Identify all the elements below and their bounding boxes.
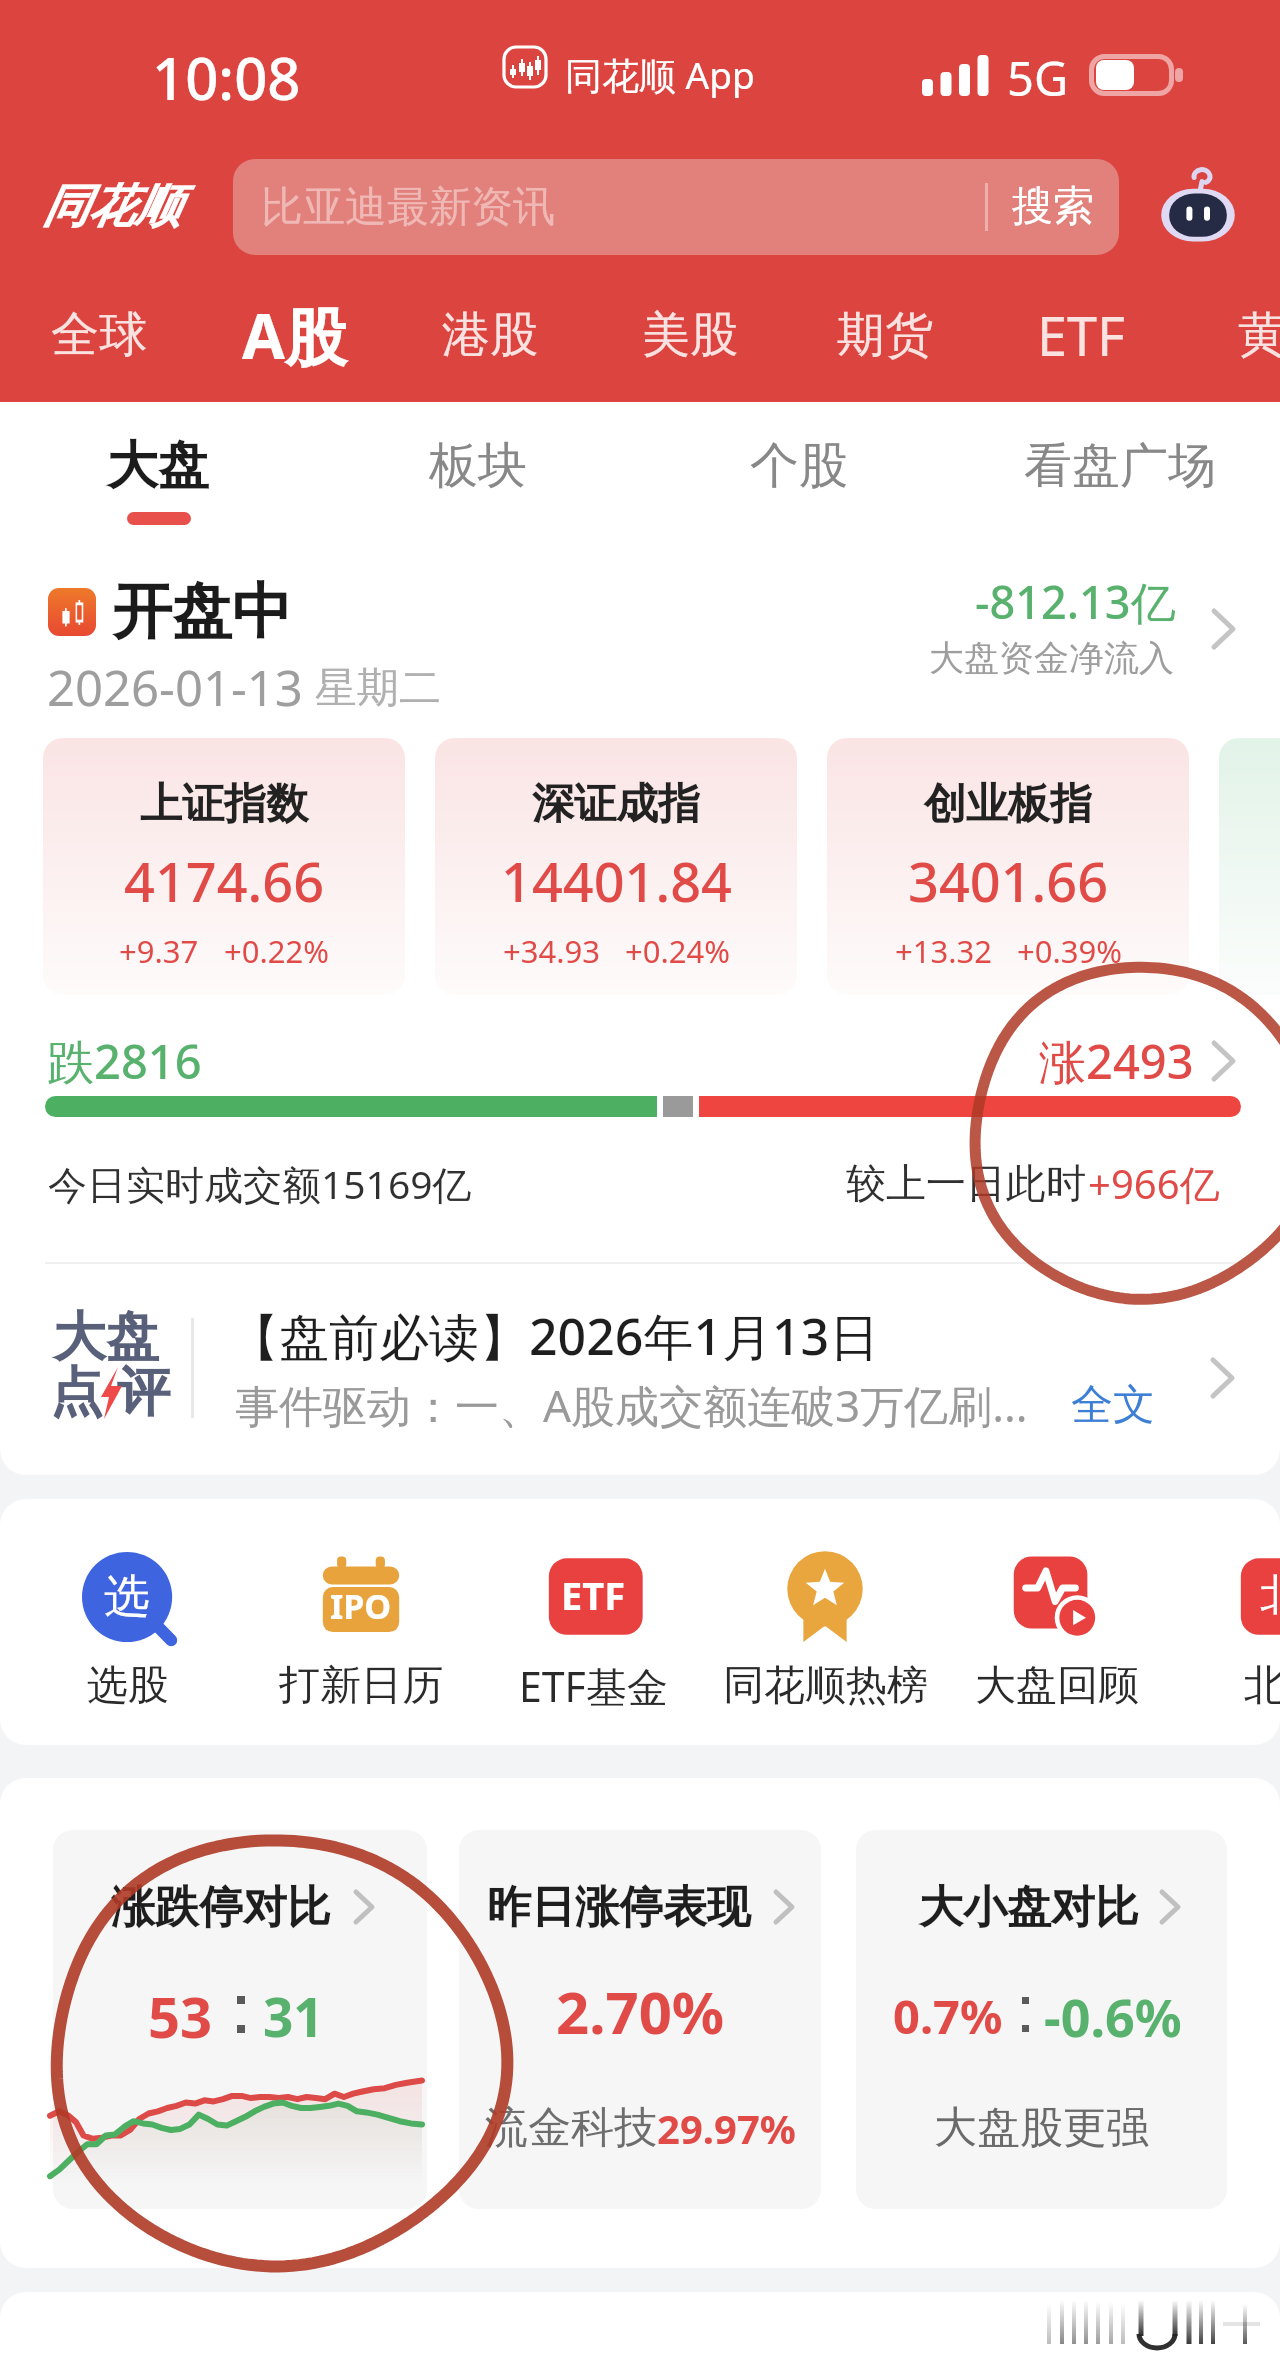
button[interactable]	[483, 1540, 703, 1730]
staticText: 板块	[429, 435, 527, 497]
button[interactable]: 跌2816	[47, 1029, 202, 1093]
staticText: 4174.66	[124, 844, 325, 918]
staticText: 大盘	[107, 434, 209, 498]
button[interactable]: 港股	[442, 305, 538, 365]
staticText: 【盘前必读】2026年1月13日	[229, 1302, 880, 1370]
button[interactable]: 期货	[837, 305, 933, 365]
staticText: 2.70%	[556, 1972, 725, 2051]
staticText: 5G	[1007, 46, 1069, 110]
staticText: 北交	[1244, 1660, 1280, 1712]
button[interactable]	[233, 159, 1119, 255]
button[interactable]	[1175, 1540, 1280, 1730]
staticText: 涨2493	[1039, 1029, 1194, 1093]
staticText: +9.37	[119, 930, 199, 972]
staticText: 今日实时成交额15169亿	[48, 1157, 472, 1210]
button[interactable]: 涨2493	[1039, 1029, 1194, 1093]
staticText: 53	[148, 1978, 213, 2054]
staticText: 事件驱动：一、A股成交额连破3万亿刷...	[235, 1375, 1028, 1435]
button[interactable]	[53, 1830, 427, 2209]
button[interactable]: 全文	[1071, 1379, 1155, 1432]
staticText: 跌2816	[47, 1029, 202, 1093]
staticText: IPO	[330, 1583, 392, 1629]
staticText: 打新日历	[279, 1660, 443, 1712]
staticText: 10:08	[152, 38, 301, 117]
button[interactable]: AI 助手	[1158, 168, 1238, 248]
button[interactable]: A股	[242, 293, 347, 378]
button[interactable]: ETF	[1037, 298, 1126, 372]
button[interactable]: -812.13亿	[975, 571, 1176, 632]
staticText: 0.7%	[893, 1984, 1003, 2048]
button[interactable]	[715, 1540, 935, 1730]
staticText: +966亿	[1088, 1156, 1220, 1211]
button[interactable]	[435, 738, 797, 995]
staticText: 创业板指	[924, 778, 1092, 831]
staticText: +0.24%	[625, 930, 730, 972]
staticText: 看盘广场	[1024, 436, 1216, 496]
button[interactable]	[18, 1540, 238, 1730]
staticText: 选股	[87, 1660, 169, 1712]
button[interactable]: 板块	[429, 435, 527, 497]
button[interactable]	[251, 1540, 471, 1730]
button[interactable]: 全球	[51, 305, 147, 365]
staticText: 大盘	[53, 1304, 159, 1371]
staticText: 黄	[1238, 305, 1280, 365]
staticText: 点	[50, 1359, 103, 1426]
staticText: 全文	[1071, 1379, 1155, 1432]
staticText: +13.32	[895, 930, 992, 972]
staticText: A股	[242, 293, 347, 378]
staticText: 期货	[837, 305, 933, 365]
button[interactable]: 看盘广场	[1024, 436, 1216, 496]
staticText: 较上一日此时	[846, 1158, 1086, 1208]
staticText: 昨日涨停表现	[487, 1880, 751, 1935]
staticText: 流金科技	[485, 2101, 657, 2155]
staticText: 同花顺 App	[565, 49, 755, 100]
staticText: 开盘中	[112, 574, 292, 650]
button[interactable]: 涨跌详情	[1205, 1035, 1245, 1087]
staticText: +0.39%	[1017, 930, 1122, 972]
staticText: 评	[117, 1359, 170, 1426]
staticText: 全球	[51, 305, 147, 365]
staticText: 同花顺	[42, 178, 180, 236]
staticText: 选	[104, 1568, 150, 1626]
staticText: 比亚迪最新资讯	[261, 181, 555, 234]
staticText: 搜索	[1012, 181, 1094, 233]
button[interactable]: 大盘	[107, 434, 209, 498]
staticText: ETF基金	[519, 1658, 668, 1714]
button[interactable]	[827, 738, 1189, 995]
staticText: 港股	[442, 305, 538, 365]
staticText: +34.93	[503, 930, 600, 972]
staticText: 大盘资金净流入	[929, 636, 1174, 680]
staticText: ETF	[561, 1569, 626, 1621]
staticText: 3401.66	[908, 844, 1109, 918]
staticText: ETF	[1037, 298, 1126, 372]
staticText: 29.97%	[657, 2101, 796, 2155]
button[interactable]	[43, 738, 405, 995]
staticText: +0.22%	[224, 930, 329, 972]
staticText: 大小盘对比	[919, 1880, 1139, 1935]
button[interactable]	[459, 1830, 821, 2209]
staticText: 美股	[642, 305, 738, 365]
staticText: 上证指数	[140, 778, 308, 831]
button[interactable]	[947, 1540, 1167, 1730]
staticText: 星期二	[315, 662, 441, 715]
staticText: 同花顺热榜	[723, 1660, 928, 1712]
staticText: 14401.84	[501, 844, 732, 918]
staticText: 大盘回顾	[975, 1660, 1139, 1712]
staticText: 2026-01-13	[47, 654, 303, 721]
staticText: 涨跌停对比	[111, 1880, 331, 1935]
button[interactable]	[856, 1830, 1227, 2209]
staticText: 北	[1260, 1569, 1280, 1622]
other: 查看全文	[1204, 1352, 1244, 1404]
staticText: -812.13亿	[975, 571, 1176, 632]
staticText: 深证成指	[532, 778, 700, 831]
button[interactable]: 资金流入详情	[1205, 603, 1245, 655]
staticText: 个股	[750, 435, 848, 497]
staticText: -0.6%	[1044, 1981, 1182, 2052]
button[interactable]: 黄	[1238, 305, 1280, 365]
button[interactable]	[0, 1290, 1280, 1450]
button[interactable]: 个股	[750, 435, 848, 497]
button[interactable]: 美股	[642, 305, 738, 365]
